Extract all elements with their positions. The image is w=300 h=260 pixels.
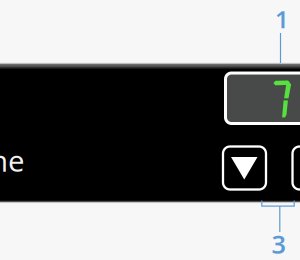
staticText: 3 bbox=[271, 227, 285, 260]
button[interactable]: Increase bbox=[292, 146, 300, 189]
staticText: 1 bbox=[275, 3, 289, 35]
staticText: ne bbox=[0, 141, 25, 180]
button[interactable]: Decrease bbox=[223, 146, 266, 189]
